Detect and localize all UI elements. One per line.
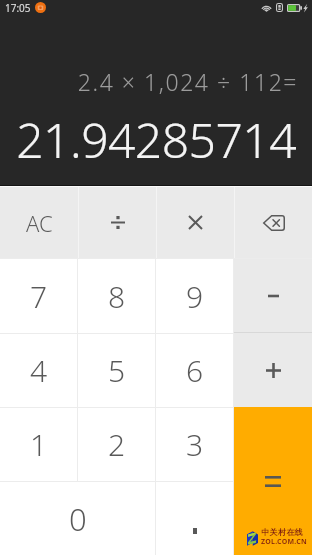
button[interactable]: 4 bbox=[0, 334, 77, 407]
button[interactable]: Backspace bbox=[235, 187, 312, 258]
staticText: 21.94285714 bbox=[16, 107, 296, 172]
button[interactable]: 6 bbox=[156, 334, 233, 407]
staticText: 5 bbox=[108, 350, 126, 391]
button[interactable]: 0 bbox=[0, 482, 155, 555]
staticText: 6 bbox=[186, 350, 204, 391]
button[interactable]: 7 bbox=[0, 259, 77, 333]
staticText: 17:05 bbox=[5, 1, 31, 15]
button[interactable]: 2 bbox=[78, 408, 155, 481]
button[interactable]: Minus bbox=[234, 259, 312, 332]
button[interactable]: Decimal point bbox=[156, 482, 233, 555]
staticText: 9 bbox=[186, 276, 204, 317]
staticText: 4 bbox=[30, 350, 48, 391]
staticText: 2.4 × 1,024 ÷ 112= bbox=[77, 66, 298, 97]
button[interactable]: Plus bbox=[234, 333, 312, 407]
button[interactable]: AC bbox=[0, 187, 78, 258]
staticText: 1 bbox=[30, 424, 48, 465]
button[interactable]: Equals bbox=[234, 407, 312, 555]
staticText: 中关村在线 bbox=[261, 527, 303, 537]
button[interactable]: 5 bbox=[78, 334, 155, 407]
staticText: 7 bbox=[30, 276, 48, 317]
button[interactable]: 9 bbox=[156, 259, 233, 333]
staticText: 0 bbox=[69, 498, 87, 540]
button[interactable]: 1 bbox=[0, 408, 77, 481]
staticText: AC bbox=[26, 208, 53, 238]
button[interactable]: 8 bbox=[78, 259, 155, 333]
button[interactable]: Multiply bbox=[157, 187, 234, 258]
staticText: 3 bbox=[186, 424, 204, 465]
button[interactable]: Divide bbox=[79, 187, 156, 258]
staticText: ZOL.COM.CN bbox=[261, 537, 307, 547]
staticText: 2 bbox=[108, 424, 126, 465]
button[interactable]: 3 bbox=[156, 408, 233, 481]
staticText: 8 bbox=[108, 276, 126, 317]
